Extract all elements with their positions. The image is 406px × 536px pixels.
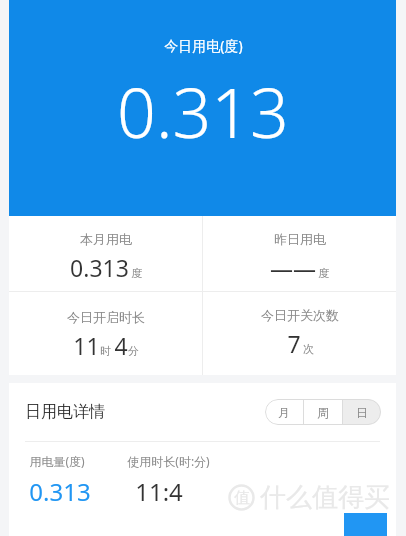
staticText: 本月用电 — [80, 231, 132, 247]
staticText: 分 — [128, 344, 139, 358]
staticText: 今日开关次数 — [261, 307, 339, 323]
staticText: 周 — [317, 405, 329, 420]
button[interactable]: 日 — [343, 399, 381, 425]
staticText: 7 — [287, 328, 301, 359]
staticText: 0.313 — [70, 252, 129, 283]
staticText: 值 — [234, 488, 250, 508]
staticText: 什么值得买 — [260, 481, 390, 514]
button[interactable]: 今日开关次数 — [203, 292, 396, 375]
staticText: 今日开启时长 — [67, 309, 145, 325]
staticText: 昨日用电 — [274, 231, 326, 247]
staticText: 日 — [356, 405, 368, 420]
staticText: 今日用电(度) — [164, 36, 243, 55]
button[interactable]: 今日开启时长 — [9, 292, 202, 375]
staticText: —— — [270, 252, 316, 283]
staticText: 度 — [318, 266, 329, 280]
staticText: 0.313 — [29, 475, 91, 508]
staticText: 4 — [114, 330, 128, 361]
staticText: 度 — [131, 266, 142, 280]
staticText: 用电量(度) — [29, 453, 85, 469]
staticText: 11:4 — [135, 475, 183, 508]
button[interactable]: 今日用电(度) — [9, 0, 396, 216]
button[interactable]: 月 — [265, 399, 303, 425]
staticText: 月 — [278, 405, 290, 420]
button[interactable]: 昨日用电 — [203, 216, 396, 291]
staticText: 次 — [303, 342, 314, 356]
staticText: 11 — [73, 330, 100, 361]
staticText: 时 — [100, 344, 111, 358]
staticText: 使用时长(时:分) — [127, 453, 210, 469]
button[interactable]: 周 — [304, 399, 342, 425]
staticText: 0.313 — [117, 65, 289, 158]
button[interactable]: 本月用电 — [9, 216, 202, 291]
staticText: 日用电详情 — [25, 402, 105, 422]
